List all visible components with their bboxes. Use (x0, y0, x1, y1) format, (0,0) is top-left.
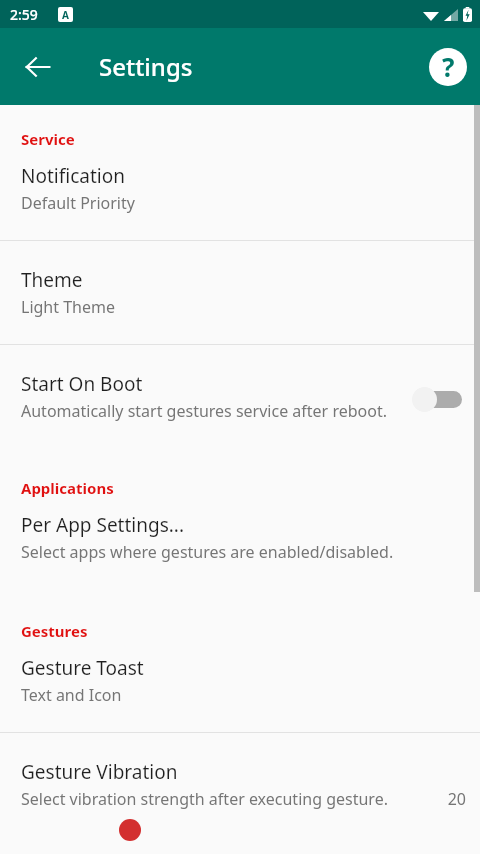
button[interactable]: Help (424, 43, 472, 91)
staticText: Gesture Vibration (21, 759, 178, 785)
staticText: Gesture Toast (21, 655, 144, 681)
staticText: Start On Boot (21, 371, 143, 397)
button[interactable]: Start On Boot (0, 345, 480, 432)
staticText: Default Priority (21, 192, 135, 214)
button[interactable]: Theme (0, 241, 480, 344)
staticText: Select vibration strength after executin… (21, 788, 428, 810)
staticText: Gestures (21, 621, 480, 641)
staticText: Per App Settings... (21, 512, 185, 538)
staticText: Applications (21, 478, 480, 498)
button[interactable]: Gesture Toast (0, 641, 480, 732)
button[interactable]: Start On Boot toggle, off (412, 384, 466, 414)
staticText: 2:59 (10, 5, 38, 24)
staticText: Service (21, 129, 480, 149)
staticText: A (62, 8, 69, 22)
button[interactable]: Back (14, 43, 62, 91)
staticText: Light Theme (21, 296, 115, 318)
staticText: Text and Icon (21, 684, 122, 706)
staticText: Select apps where gestures are enabled/d… (21, 541, 394, 563)
button[interactable]: Notification (0, 149, 480, 240)
staticText: Settings (99, 50, 193, 83)
staticText: Notification (21, 163, 125, 189)
staticText: Theme (21, 267, 83, 293)
button[interactable]: Gesture Vibration (0, 733, 480, 840)
staticText: 20 (438, 788, 466, 810)
button[interactable]: Per App Settings... (0, 498, 480, 573)
staticText: ? (442, 49, 455, 84)
staticText: Automatically start gestures service aft… (21, 400, 387, 422)
